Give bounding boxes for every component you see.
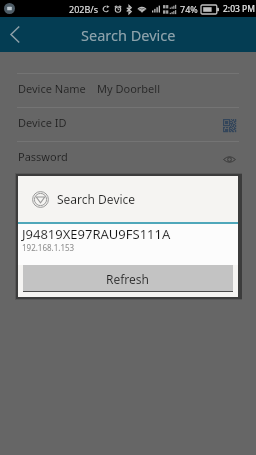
button[interactable]: Refresh bbox=[23, 265, 233, 292]
button[interactable]: J94819XE97RAU9FS111A bbox=[18, 224, 238, 265]
staticText: J94819XE97RAU9FS111A bbox=[22, 225, 171, 243]
staticText: 74% bbox=[180, 3, 198, 15]
button[interactable]: Device Name bbox=[0, 74, 256, 107]
button[interactable]: Show password bbox=[219, 149, 239, 169]
button[interactable]: Password bbox=[0, 142, 256, 175]
staticText: Device Name bbox=[18, 81, 86, 96]
staticText: Refresh bbox=[106, 271, 150, 287]
staticText: Search Device bbox=[81, 25, 176, 45]
staticText: Device ID bbox=[18, 115, 67, 130]
staticText: My Doorbell bbox=[97, 81, 160, 96]
button[interactable]: Scan QR code bbox=[219, 115, 239, 135]
staticText: 192.168.1.153 bbox=[22, 242, 75, 253]
button[interactable]: Device ID bbox=[0, 108, 256, 141]
staticText: Password bbox=[18, 149, 68, 164]
button[interactable]: Back bbox=[0, 17, 30, 52]
staticText: Search Device bbox=[57, 191, 136, 207]
staticText: 2:03 PM bbox=[223, 3, 255, 15]
staticText: 202B/s bbox=[69, 3, 98, 15]
